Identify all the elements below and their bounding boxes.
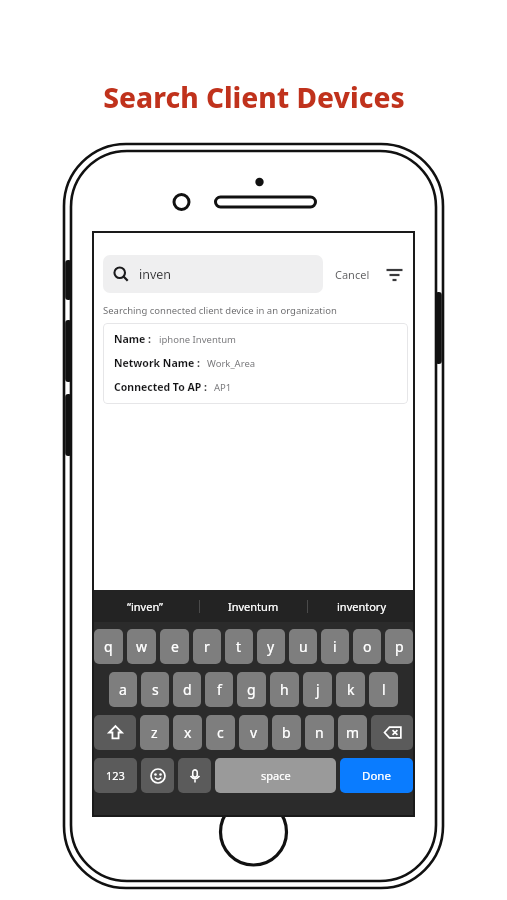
button[interactable]: g (237, 672, 266, 707)
button[interactable]: h (270, 672, 299, 707)
button[interactable]: a (109, 672, 137, 707)
staticText: j (316, 680, 320, 699)
button[interactable]: p (385, 629, 413, 664)
button[interactable]: Cancel (333, 261, 372, 288)
button[interactable]: c (206, 715, 235, 750)
staticText: Connected To AP : (114, 380, 207, 394)
staticText: d (183, 680, 192, 699)
staticText: Work_Area (207, 357, 256, 370)
staticText: s (152, 680, 159, 699)
button[interactable]: j (303, 672, 332, 707)
staticText: iphone Inventum (159, 333, 236, 346)
button[interactable]: “inven” (92, 599, 199, 614)
button[interactable]: space (215, 758, 336, 793)
button[interactable]: m (338, 715, 367, 750)
staticText: f (217, 680, 222, 699)
button[interactable]: o (353, 629, 381, 664)
button[interactable]: e (160, 629, 189, 664)
staticText: inven (139, 266, 172, 283)
button[interactable]: w (127, 629, 156, 664)
button[interactable]: 123 (94, 758, 137, 793)
button[interactable]: Emoji (141, 758, 174, 793)
staticText: o (363, 637, 372, 656)
staticText: i (333, 637, 337, 656)
staticText: p (395, 637, 404, 656)
staticText: Search Client Devices (103, 78, 405, 116)
button[interactable]: n (305, 715, 334, 750)
button[interactable]: x (173, 715, 202, 750)
staticText: k (347, 680, 355, 699)
staticText: Cancel (335, 267, 370, 282)
staticText: v (250, 723, 258, 742)
staticText: l (382, 680, 386, 699)
staticText: m (346, 723, 360, 742)
staticText: q (104, 637, 113, 656)
staticText: space (261, 768, 291, 783)
staticText: t (236, 637, 242, 656)
button[interactable]: u (289, 629, 317, 664)
staticText: w (136, 637, 148, 656)
staticText: u (299, 637, 308, 656)
button[interactable]: l (369, 672, 398, 707)
button[interactable]: inventory (308, 599, 415, 614)
button[interactable]: Shift (94, 715, 136, 750)
button[interactable]: b (272, 715, 301, 750)
button[interactable]: Dictate (178, 758, 211, 793)
button[interactable]: q (94, 629, 123, 664)
staticText: g (247, 680, 256, 699)
staticText: inventory (337, 599, 387, 614)
staticText: 123 (106, 768, 125, 783)
button[interactable]: d (173, 672, 201, 707)
button[interactable]: t (225, 629, 253, 664)
button[interactable]: Done (340, 758, 413, 793)
button[interactable]: s (141, 672, 169, 707)
staticText: AP1 (214, 381, 232, 394)
staticText: Done (362, 768, 391, 784)
button[interactable]: f (205, 672, 233, 707)
button[interactable]: k (336, 672, 365, 707)
button[interactable]: z (140, 715, 169, 750)
staticText: x (184, 723, 192, 742)
staticText: Searching connected client device in an … (103, 304, 337, 317)
button[interactable]: i (321, 629, 349, 664)
staticText: n (315, 723, 324, 742)
staticText: Name : (114, 332, 152, 346)
staticText: c (217, 723, 224, 742)
staticText: y (267, 637, 275, 656)
staticText: r (204, 637, 210, 656)
staticText: Inventum (228, 599, 279, 614)
button[interactable]: Filter (383, 263, 405, 285)
button[interactable]: v (239, 715, 268, 750)
button[interactable]: r (193, 629, 221, 664)
staticText: z (151, 723, 158, 742)
staticText: h (280, 680, 289, 699)
staticText: a (119, 680, 127, 699)
staticText: b (282, 723, 291, 742)
staticText: e (171, 637, 179, 656)
button[interactable]: Inventum (200, 599, 307, 614)
button[interactable]: Backspace (371, 715, 413, 750)
staticText: “inven” (127, 599, 164, 614)
button[interactable]: y (257, 629, 285, 664)
button[interactable]: Name : (103, 323, 408, 404)
staticText: Network Name : (114, 356, 200, 370)
button[interactable]: inven (103, 255, 323, 293)
